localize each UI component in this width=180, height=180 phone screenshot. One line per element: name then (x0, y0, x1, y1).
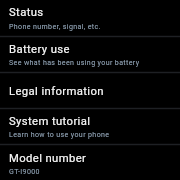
staticText: Legal information (9, 85, 104, 98)
staticText: Status (9, 6, 44, 19)
staticText: Battery use (9, 43, 70, 56)
button[interactable] (0, 0, 180, 36)
staticText: Learn how to use your phone (9, 130, 110, 138)
button[interactable] (0, 145, 180, 180)
staticText: System tutorial (9, 115, 91, 128)
button[interactable] (0, 72, 180, 108)
staticText: Phone number, signal, etc. (9, 22, 101, 30)
staticText: Model number (9, 152, 87, 165)
button[interactable] (0, 109, 180, 145)
button[interactable] (0, 36, 180, 72)
staticText: GT-I9000 (9, 167, 40, 175)
staticText: See what has been using your battery (9, 58, 140, 66)
